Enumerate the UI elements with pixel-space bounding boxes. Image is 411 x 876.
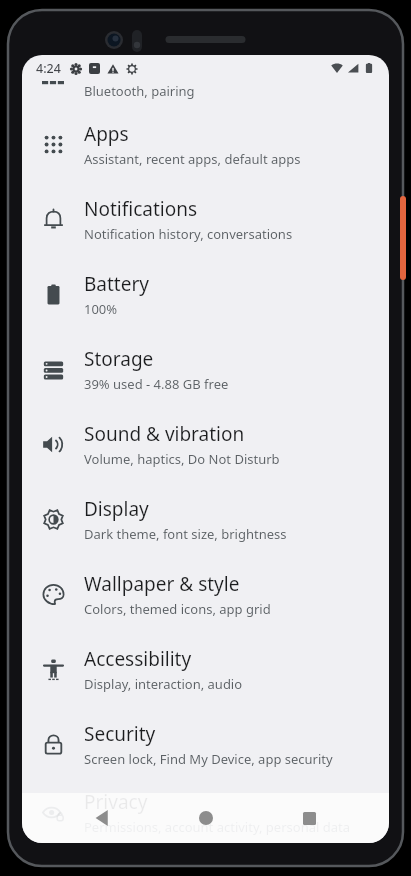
- staticText: Sound & vibration: [84, 421, 245, 447]
- button[interactable]: Home: [182, 794, 230, 842]
- staticText: Accessibility: [84, 646, 192, 672]
- staticText: Assistant, recent apps, default apps: [84, 150, 301, 168]
- staticText: Display: [84, 496, 149, 522]
- button[interactable]: Sound & vibration: [22, 407, 389, 482]
- staticText: Battery: [84, 271, 149, 297]
- staticText: Display, interaction, audio: [84, 675, 243, 693]
- staticText: 100%: [84, 300, 118, 318]
- button[interactable]: Battery: [22, 257, 389, 332]
- staticText: Bluetooth, pairing: [84, 82, 195, 100]
- staticText: Storage: [84, 346, 154, 372]
- button[interactable]: Storage: [22, 332, 389, 407]
- staticText: 39% used - 4.88 GB free: [84, 375, 229, 393]
- staticText: Dark theme, font size, brightness: [84, 525, 287, 543]
- button[interactable]: Privacy: [22, 782, 389, 843]
- button[interactable]: Accessibility: [22, 632, 389, 707]
- staticText: Volume, haptics, Do Not Disturb: [84, 450, 280, 468]
- button[interactable]: Back: [78, 794, 126, 842]
- staticText: Colors, themed icons, app grid: [84, 600, 271, 618]
- staticText: 4:24: [36, 60, 61, 77]
- button[interactable]: Display: [22, 482, 389, 557]
- button[interactable]: Notifications: [22, 182, 389, 257]
- button[interactable]: Recent apps: [285, 794, 333, 842]
- button[interactable]: Wallpaper & style: [22, 557, 389, 632]
- staticText: Wallpaper & style: [84, 571, 240, 597]
- staticText: Permissions, account activity, personal …: [84, 818, 350, 836]
- staticText: Screen lock, Find My Device, app securit…: [84, 750, 333, 768]
- button[interactable]: Apps: [22, 107, 389, 182]
- button[interactable]: Bluetooth, pairing: [22, 81, 389, 107]
- staticText: Notifications: [84, 196, 198, 222]
- staticText: Security: [84, 721, 156, 747]
- staticText: Notification history, conversations: [84, 225, 293, 243]
- staticText: Privacy: [84, 789, 148, 815]
- button[interactable]: Security: [22, 707, 389, 782]
- staticText: Apps: [84, 121, 129, 147]
